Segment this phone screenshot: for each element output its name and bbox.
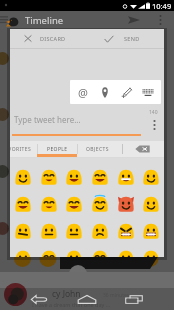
button[interactable]: Emoji	[113, 217, 139, 244]
staticText: 140	[149, 109, 158, 116]
button[interactable]: Send tweet	[124, 12, 144, 28]
button[interactable]: Recent apps	[121, 288, 147, 310]
staticText: DISCARD	[40, 35, 66, 42]
button[interactable]: Emoji	[113, 190, 139, 217]
button[interactable]: Emoji	[138, 244, 164, 257]
button[interactable]: Emoji	[36, 244, 62, 257]
button[interactable]: Emoji	[138, 190, 164, 217]
staticText: Type tweet here...	[14, 114, 81, 125]
button[interactable]: FAVORITES	[10, 141, 37, 157]
button[interactable]: Emoji	[113, 244, 139, 257]
button[interactable]: SEND	[87, 29, 164, 48]
staticText: SEND	[124, 35, 140, 42]
button[interactable]: Emoji	[61, 217, 87, 244]
button[interactable]: PEOPLE	[37, 141, 77, 157]
button[interactable]: Emoji	[36, 217, 62, 244]
button[interactable]: Emoji	[61, 244, 87, 257]
button[interactable]: Emoji	[87, 163, 113, 190]
button[interactable]: Attach file	[117, 83, 135, 101]
button[interactable]: Emoji	[10, 163, 36, 190]
button[interactable]: Composer options	[147, 118, 161, 132]
button[interactable]: Mention someone	[74, 83, 92, 101]
button[interactable]: Emoji	[113, 163, 139, 190]
staticText: 10:49	[152, 1, 172, 11]
button[interactable]: Show keyboard	[139, 83, 157, 101]
button[interactable]: Add location	[96, 83, 114, 101]
staticText: @	[78, 85, 88, 100]
button[interactable]: Open navigation drawer	[0, 12, 11, 26]
button[interactable]: Emoji	[36, 190, 62, 217]
button[interactable]: Home	[74, 288, 100, 310]
button[interactable]: Emoji	[10, 217, 36, 244]
staticText: OBJECTS	[86, 146, 109, 153]
button[interactable]: Emoji	[10, 244, 36, 257]
staticText: FAVORITES	[10, 146, 32, 153]
staticText: PEOPLE	[47, 146, 68, 153]
button[interactable]: Emoji	[138, 163, 164, 190]
staticText: Timeline	[25, 14, 64, 27]
button[interactable]: Back	[26, 288, 52, 310]
button[interactable]: Emoji	[87, 244, 113, 257]
staticText: 36 minutes	[103, 292, 130, 299]
button[interactable]: Emoji	[61, 190, 87, 217]
button[interactable]: DISCARD	[10, 29, 87, 48]
button[interactable]: Emoji	[138, 217, 164, 244]
button[interactable]: More options	[153, 12, 167, 28]
button[interactable]: OBJECTS	[77, 141, 117, 157]
staticText: I have a dream that one day ...	[32, 301, 111, 308]
button[interactable]: Emoji	[36, 163, 62, 190]
button[interactable]: Backspace	[127, 141, 157, 157]
button[interactable]: Emoji	[10, 190, 36, 217]
button[interactable]: Emoji	[87, 217, 113, 244]
button[interactable]: Emoji	[87, 190, 113, 217]
staticText: cy John	[52, 288, 81, 300]
button[interactable]: Emoji	[61, 163, 87, 190]
